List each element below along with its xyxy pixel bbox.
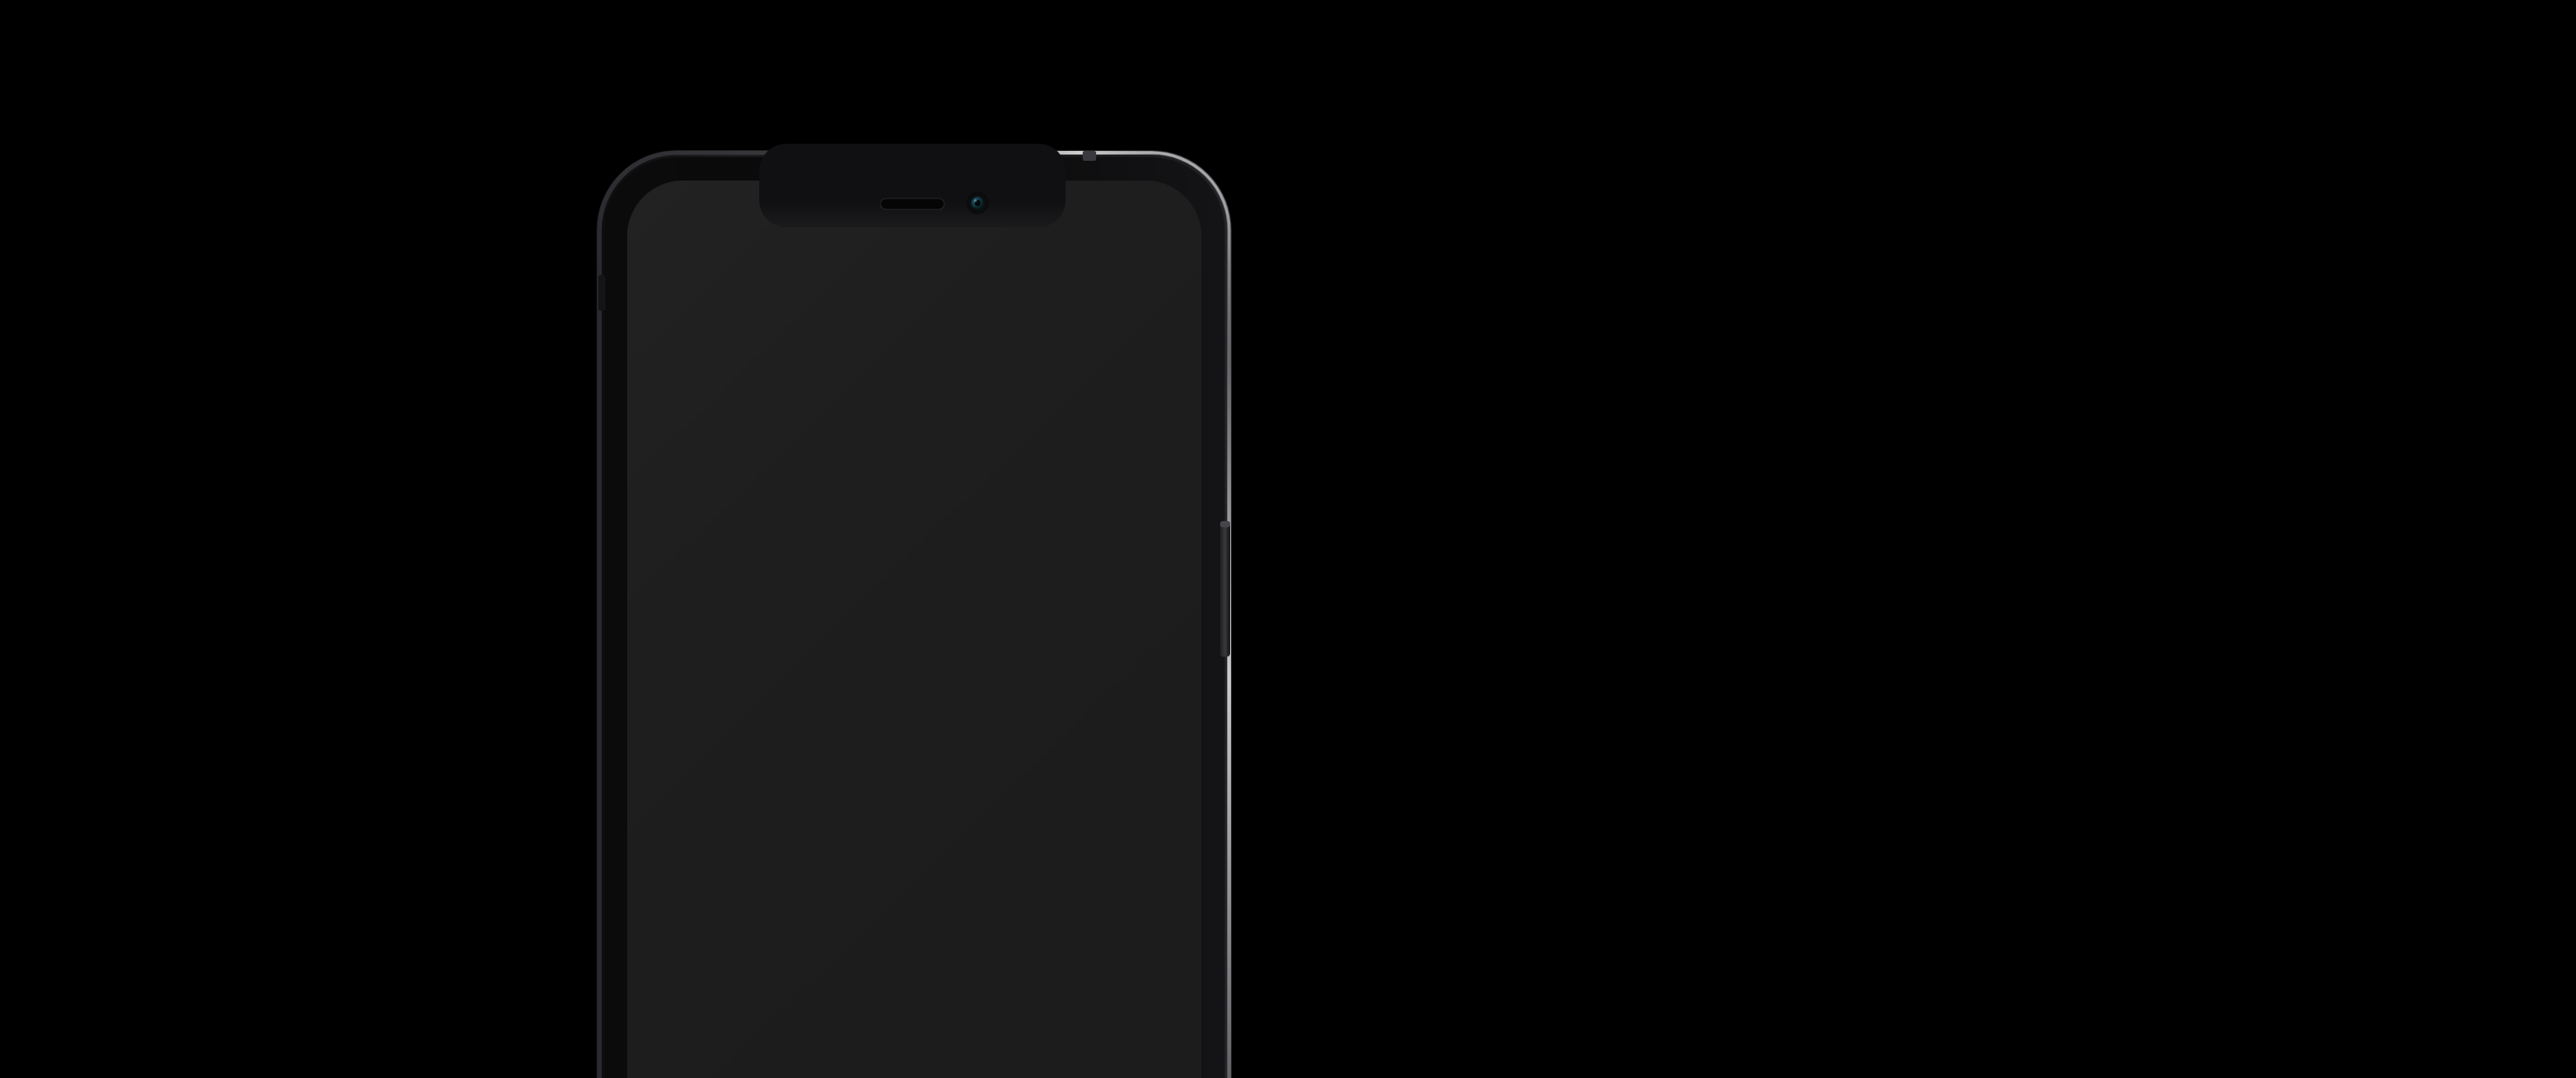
button[interactable]: Smartphone device mockup: [0, 0, 2576, 1078]
